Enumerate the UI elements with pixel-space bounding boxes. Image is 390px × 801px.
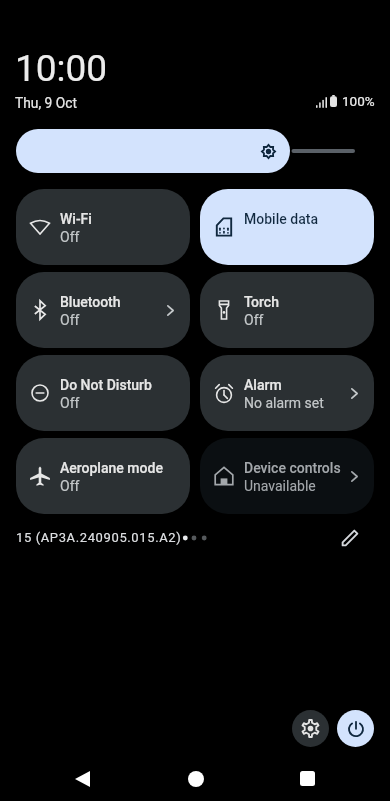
button[interactable]: Torch bbox=[200, 272, 374, 348]
button[interactable]: Device controls bbox=[200, 438, 374, 514]
button[interactable]: Brightness bbox=[16, 129, 290, 173]
staticText: 10:00 bbox=[15, 47, 108, 90]
staticText: Alarm bbox=[244, 377, 282, 393]
staticText: 15 (AP3A.240905.015.A2) bbox=[16, 530, 182, 545]
button[interactable]: Do Not Disturb bbox=[16, 355, 190, 431]
staticText: Off bbox=[60, 395, 80, 411]
button[interactable]: Bluetooth bbox=[16, 272, 190, 348]
staticText: Torch bbox=[244, 294, 279, 310]
staticText: Aeroplane mode bbox=[60, 460, 163, 476]
staticText: Unavailable bbox=[244, 478, 316, 494]
button[interactable]: Wi-Fi bbox=[16, 189, 190, 265]
staticText: Wi-Fi bbox=[60, 211, 92, 227]
staticText: No alarm set bbox=[244, 395, 324, 411]
button[interactable]: Power bbox=[337, 710, 374, 747]
button[interactable]: Mobile data bbox=[200, 189, 374, 265]
button[interactable]: Aeroplane mode bbox=[16, 438, 190, 514]
button[interactable]: Settings bbox=[292, 710, 329, 747]
staticText: 100% bbox=[342, 93, 375, 109]
button[interactable]: Alarm bbox=[200, 355, 374, 431]
staticText: Mobile data bbox=[244, 211, 319, 227]
staticText: Off bbox=[60, 229, 80, 245]
staticText: Bluetooth bbox=[60, 294, 121, 310]
staticText: Do Not Disturb bbox=[60, 377, 152, 393]
button[interactable]: Recents bbox=[285, 762, 330, 795]
staticText: Off bbox=[60, 312, 80, 328]
staticText: Thu, 9 Oct bbox=[15, 95, 77, 111]
staticText: Off bbox=[60, 478, 80, 494]
staticText: Off bbox=[244, 312, 264, 328]
button[interactable]: Home bbox=[173, 762, 218, 795]
button[interactable]: Edit tiles bbox=[336, 524, 364, 552]
staticText: Device controls bbox=[244, 460, 341, 476]
button[interactable]: Back bbox=[60, 762, 105, 795]
